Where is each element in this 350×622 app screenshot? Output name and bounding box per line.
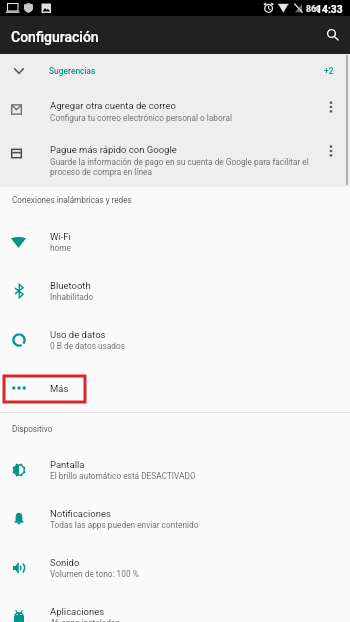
button[interactable]: Sugerencias [0,54,350,88]
staticText: +2 [324,66,334,76]
staticText: Volumen de tono: 100 % [50,569,139,579]
staticText: 14:33 [316,3,343,15]
staticText: Más [50,383,69,394]
staticText: Sugerencias [49,66,96,76]
staticText: Configuración [11,29,99,45]
button[interactable]: Más [0,364,350,412]
staticText: 46 apps instaladas [50,618,120,622]
button[interactable]: Buscar [312,16,350,54]
staticText: Notificaciones [50,508,111,519]
staticText: Wi-Fi [50,231,71,242]
button[interactable]: Notificaciones [0,494,350,543]
staticText: Guarde la información de pago en su cuen… [50,157,315,177]
staticText: Uso de datos [50,329,106,340]
button[interactable]: Sonido [0,543,350,592]
staticText: 86 [306,4,316,14]
staticText: Pantalla [50,459,85,470]
button[interactable]: Pantalla [0,445,350,494]
staticText: Bluetooth [50,280,91,291]
staticText: Configura tu correo electrónico personal… [50,113,232,123]
button[interactable]: Uso de datos [0,315,350,364]
button[interactable]: Más opciones [323,88,350,134]
staticText: Aplicaciones [50,606,105,617]
button[interactable]: Bluetooth [0,266,350,315]
staticText: home [50,243,71,253]
staticText: % [314,5,320,14]
button[interactable]: Aplicaciones [0,592,350,622]
button[interactable]: Más opciones [323,134,350,180]
staticText: Dispositivo [12,424,53,434]
staticText: Pague más rápido con Google [50,144,177,155]
staticText: Inhabilitado [50,292,94,302]
button[interactable]: Agregar otra cuenta de correo [0,88,350,134]
staticText: Todas las apps pueden enviar contenido [50,520,199,530]
staticText: El brillo automático está DESACTIVADO [50,471,196,481]
staticText: Conexiones inalámbricas y redes [12,195,132,205]
staticText: 0 B de datos usados [50,341,126,351]
button[interactable]: Wi-Fi [0,217,350,266]
button[interactable]: Pague más rápido con Google [0,134,350,180]
staticText: Agregar otra cuenta de correo [50,100,176,111]
staticText: Sonido [50,557,80,568]
